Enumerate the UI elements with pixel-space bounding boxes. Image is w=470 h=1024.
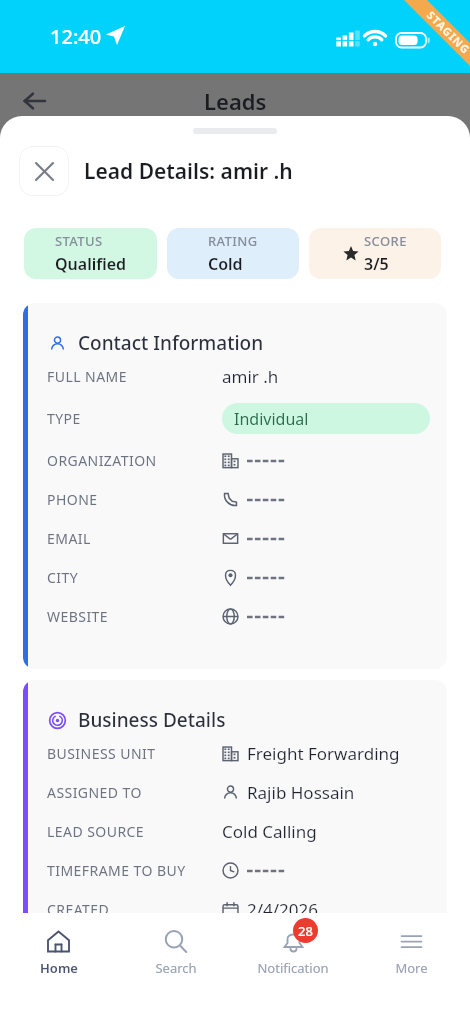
staticText: Rajib Hossain — [247, 781, 355, 804]
staticText: amir .h — [222, 365, 279, 388]
staticText: Cold — [208, 253, 243, 275]
staticText: Contact Information — [78, 330, 264, 356]
staticText: RATING — [208, 232, 258, 250]
staticText: EMAIL — [47, 529, 222, 548]
staticText: PHONE — [47, 490, 222, 509]
staticText: Cold Calling — [222, 820, 317, 843]
staticText: FULL NAME — [47, 367, 222, 386]
staticText: Lead Details: amir .h — [84, 157, 293, 186]
staticText: ASSIGNED TO — [47, 783, 222, 802]
staticText: Qualified — [55, 253, 127, 275]
staticText: TYPE — [47, 409, 222, 428]
staticText: Notification — [257, 959, 329, 977]
staticText: Business Details — [78, 707, 226, 733]
button[interactable]: Close — [19, 146, 69, 196]
staticText: LEAD SOURCE — [47, 822, 222, 841]
staticText: BUSINESS UNIT — [47, 744, 222, 763]
staticText: WEBSITE — [47, 607, 222, 626]
button[interactable]: 28 — [234, 913, 352, 977]
button[interactable]: More — [352, 913, 470, 977]
staticText: ORGANIZATION — [47, 451, 222, 470]
staticText: CITY — [47, 568, 222, 587]
staticText: 12:40 — [50, 23, 102, 50]
staticText: 28 — [298, 922, 313, 940]
staticText: Individual — [234, 408, 309, 430]
staticText: Search — [155, 959, 197, 977]
button[interactable]: SCORE — [309, 228, 441, 279]
staticText: Leads — [204, 86, 267, 116]
staticText: More — [395, 959, 428, 977]
button[interactable]: Search — [117, 913, 234, 977]
staticText: Home — [40, 959, 78, 977]
button[interactable]: STATUS — [24, 228, 157, 279]
staticText: 2/4/2026 — [247, 898, 318, 921]
staticText: STAGING — [424, 7, 470, 58]
staticText: SCORE — [364, 232, 407, 250]
staticText: Freight Forwarding — [247, 742, 400, 765]
button[interactable]: RATING — [167, 228, 299, 279]
staticText: CREATED — [47, 900, 222, 919]
staticText: TIMEFRAME TO BUY — [47, 861, 222, 880]
button[interactable]: Back — [14, 81, 54, 121]
button[interactable]: Home — [0, 913, 117, 977]
staticText: 3/5 — [364, 253, 389, 275]
staticText: STATUS — [55, 232, 103, 250]
